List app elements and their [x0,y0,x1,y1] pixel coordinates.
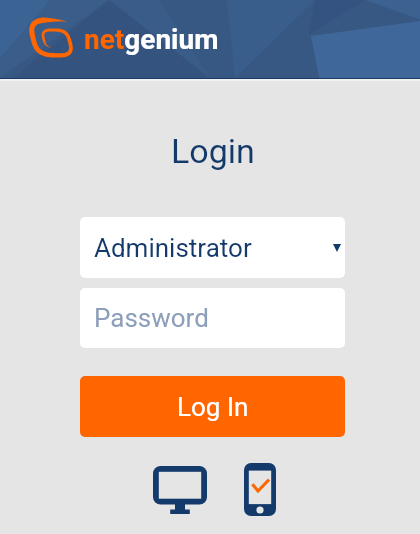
button[interactable]: Log In [80,376,345,437]
staticText: Administrator [94,233,252,263]
button[interactable]: Desktop version [149,460,217,522]
staticText: Log In [177,392,249,422]
staticText: Login [171,131,255,171]
staticText: netgenium [84,23,219,56]
staticText: Password [94,303,209,333]
button[interactable]: Mobile version [217,460,276,522]
button[interactable]: Administrator [80,217,345,278]
button[interactable]: Password [80,288,345,348]
